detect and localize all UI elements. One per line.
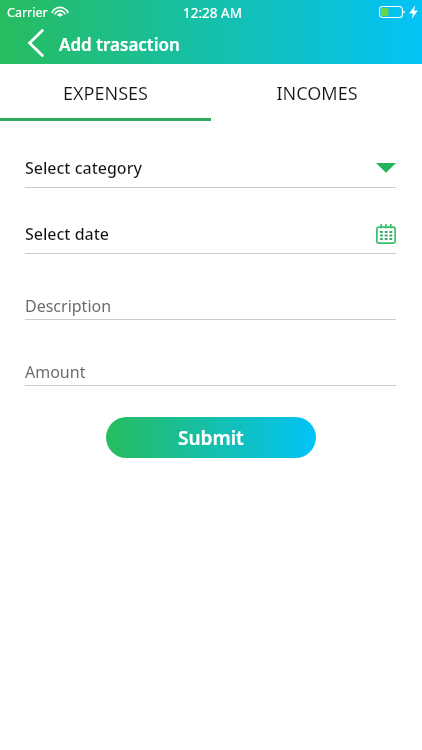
staticText: Submit bbox=[178, 425, 244, 451]
staticText: INCOMES bbox=[276, 81, 358, 106]
staticText: EXPENSES bbox=[63, 81, 148, 106]
button[interactable]: Description bbox=[25, 294, 396, 318]
button[interactable]: Select date bbox=[25, 222, 396, 246]
staticText: Description bbox=[25, 295, 112, 317]
button[interactable]: Back bbox=[19, 26, 53, 60]
staticText: Carrier bbox=[7, 4, 48, 21]
staticText: 12:28 AM bbox=[183, 4, 242, 22]
staticText: Add trasaction bbox=[59, 33, 180, 56]
button[interactable]: INCOMES bbox=[211, 67, 422, 120]
staticText: Select date bbox=[25, 223, 110, 245]
button[interactable]: Submit bbox=[106, 417, 316, 458]
staticText: Amount bbox=[25, 361, 86, 383]
button[interactable]: EXPENSES bbox=[0, 67, 211, 120]
button[interactable]: Amount bbox=[25, 360, 396, 384]
staticText: Select category bbox=[25, 157, 142, 179]
button[interactable]: Select category bbox=[25, 156, 396, 180]
